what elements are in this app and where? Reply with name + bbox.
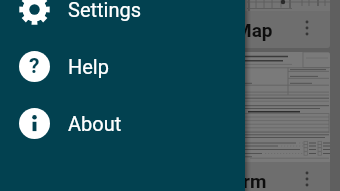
button[interactable]: More options (295, 16, 319, 40)
button[interactable]: About (0, 95, 245, 152)
staticText: ? (29, 54, 40, 79)
button[interactable]: ? (0, 38, 245, 95)
staticText: Form (222, 170, 267, 191)
staticText: About (68, 112, 122, 135)
button[interactable]: Map (221, 0, 330, 48)
staticText: Map (235, 19, 273, 41)
button[interactable]: Form (221, 52, 330, 191)
button[interactable]: More options (295, 167, 319, 191)
staticText: Help (68, 55, 109, 78)
staticText: Settings (68, 0, 142, 21)
button[interactable]: Settings (0, 0, 245, 38)
